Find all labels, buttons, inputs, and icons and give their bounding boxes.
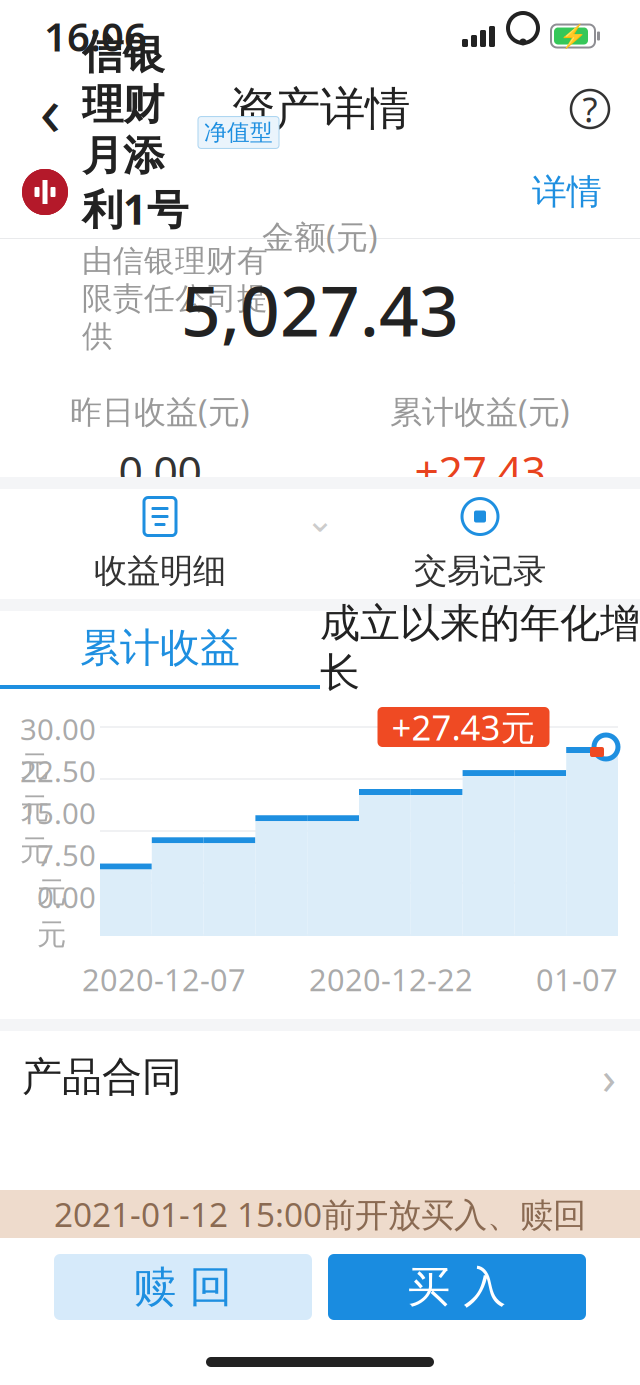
staticText: 30.00元 [20,709,96,784]
button[interactable]: 帮助 [554,72,626,146]
staticText: 详情 [532,171,602,213]
button[interactable]: 赎 回 [54,1254,312,1320]
staticText: 16:06 [44,9,147,62]
button[interactable]: 返回 [14,72,86,146]
staticText: 0.00元 [37,877,96,952]
staticText: 2021-01-12 15:00前开放买入、赎回 [54,1192,586,1236]
staticText: 金额(元) [262,215,378,258]
staticText: 累计收益(元) [390,390,570,432]
button[interactable]: 买 入 [328,1254,586,1320]
staticText: 01-07 [536,959,618,1000]
button[interactable]: 累计收益 [0,611,320,689]
staticText: 交易记录 [414,550,546,591]
staticText: › [602,1047,616,1107]
staticText: 成立以来的年化增长 [320,599,640,697]
button[interactable]: 成立以来的年化增长 [320,611,640,689]
staticText: 2020-12-22 [309,959,473,1000]
staticText: 22.50元 [20,751,96,826]
staticText: 15.00元 [20,793,96,868]
staticText: 赎 回 [133,1261,232,1313]
staticText: 信银理财月添利1号 [82,29,188,236]
staticText: 7.50元 [37,835,96,910]
staticText: ⚡ [559,23,587,49]
staticText: 5,027.43 [181,264,459,356]
staticText: 产品合同 [22,1052,182,1101]
button[interactable]: 交易记录 [320,489,640,599]
staticText: 由信银理财有限责任公司提供 [82,242,268,355]
staticText: 买 入 [407,1261,506,1313]
staticText: 昨日收益(元) [70,390,250,432]
button[interactable]: 展开 [280,503,360,537]
staticText: 资产详情 [230,81,410,137]
staticText: +27.43 [414,442,545,499]
staticText: ‹ [39,63,60,155]
button[interactable]: 收益明细 [0,489,320,599]
staticText: 0.00 [118,442,201,499]
staticText: +27.43元 [391,704,535,750]
button[interactable]: 详情 [510,152,624,232]
staticText: ? [582,86,597,132]
staticText: 净值型 [204,119,273,146]
button[interactable]: 产品合同 [0,1031,640,1123]
staticText: ⌄ [305,500,334,539]
staticText: 收益明细 [94,550,226,591]
staticText: 2020-12-07 [82,959,246,1000]
staticText: 累计收益 [80,623,240,672]
